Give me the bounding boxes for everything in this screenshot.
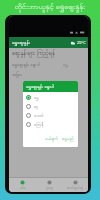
- button[interactable]: ရှာဖွေ: [36, 180, 62, 191]
- button[interactable]: အခြား: [12, 72, 23, 78]
- staticText: ရွှေ: [63, 62, 68, 68]
- button[interactable]: Weather: [70, 40, 88, 45]
- button[interactable]: ရွှေဈေးနှုန်း ရွေးပါ: [9, 60, 88, 69]
- button[interactable]: ကြေးနီ: [23, 120, 78, 129]
- staticText: ရွှေ: [34, 95, 39, 101]
- button[interactable]: ရွှေ: [23, 93, 78, 102]
- staticText: 25°C: [77, 40, 86, 45]
- staticText: ရွှေဈေးနှုန်း ရွေးပါ: [12, 61, 40, 68]
- button[interactable]: ပင်မ: [9, 180, 36, 191]
- staticText: ရွှေဈေးနှုန်း: [12, 39, 31, 46]
- staticText: ရွှေဈေးနှုန်း ရွေးပါ: [26, 83, 54, 90]
- button[interactable]: ဆက်သွယ်ရန်: [62, 180, 88, 191]
- staticText: ရှာဖွေ: [46, 186, 53, 191]
- staticText: တိုင်းဘာယူနှင့် ရွှေဈေးနှုန်း: [0, 1, 100, 13]
- staticText: ပလက်: [34, 113, 44, 119]
- staticText: ကြေးနီ: [34, 122, 44, 128]
- staticText: ဈေးနှုန်းများ ကြည့်ရန်: [12, 49, 55, 58]
- staticText: ပင်မ: [20, 186, 26, 191]
- staticText: ဆက်သွယ်ရန်: [67, 186, 83, 191]
- button[interactable]: ရွေးမည်: [60, 135, 76, 143]
- button[interactable]: ငွေ: [23, 102, 78, 111]
- button[interactable]: ပယ်ဖျက်: [43, 135, 60, 143]
- button[interactable]: ပလက်: [23, 111, 78, 120]
- staticText: ငွေ: [34, 104, 39, 110]
